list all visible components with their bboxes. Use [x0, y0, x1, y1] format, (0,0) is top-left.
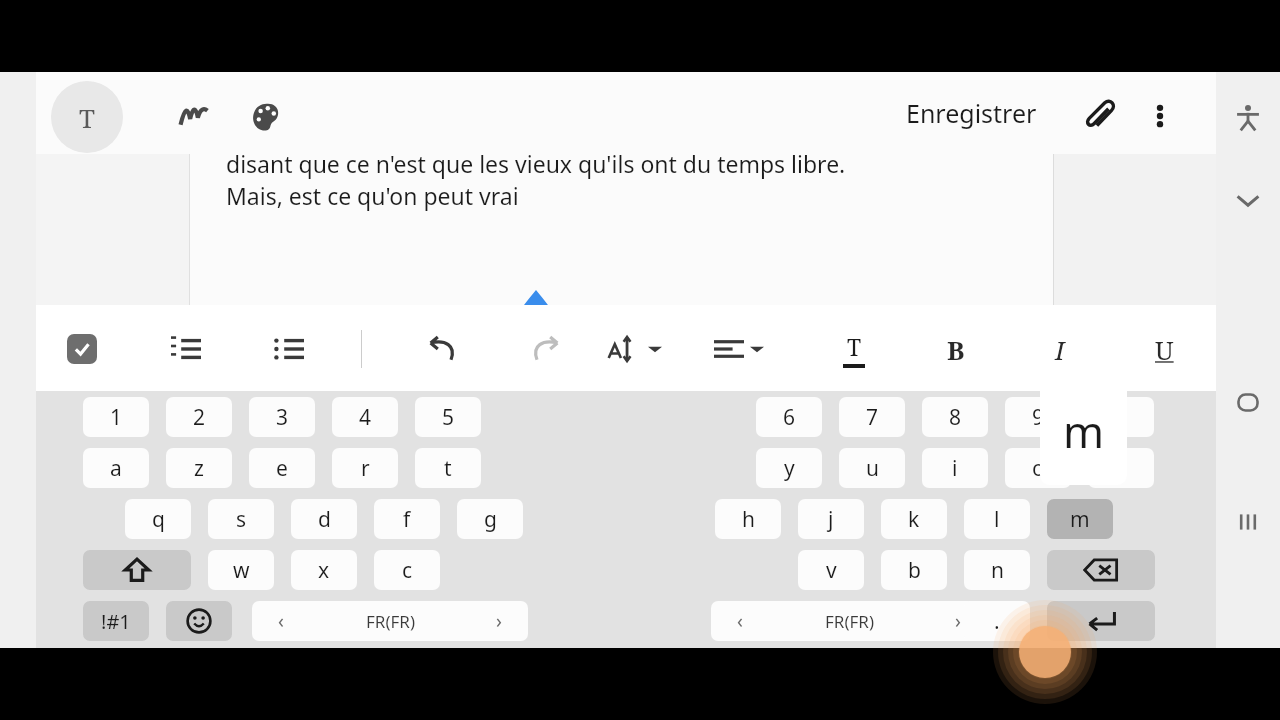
button[interactable]: i [922, 448, 988, 488]
staticText: h [742, 505, 755, 534]
staticText: m [1063, 401, 1105, 461]
staticText: b [908, 556, 921, 585]
button[interactable]: Numbered list [160, 323, 212, 375]
button[interactable]: o [1005, 448, 1071, 488]
button[interactable]: 6 [756, 397, 822, 437]
button[interactable]: g [457, 499, 523, 539]
button[interactable]: FR(FR) [711, 601, 987, 641]
button[interactable]: 9 [1005, 397, 1071, 437]
staticText: e [276, 454, 288, 483]
button[interactable]: j [798, 499, 864, 539]
button[interactable]: e [249, 448, 315, 488]
button[interactable]: B [930, 323, 982, 375]
staticText: T [79, 100, 95, 135]
button[interactable]: Text color [828, 323, 880, 375]
staticText: 5 [442, 403, 455, 432]
staticText: T [847, 331, 862, 362]
button[interactable]: b [881, 550, 947, 590]
staticText: B [947, 332, 965, 367]
button[interactable]: Font size [608, 323, 662, 375]
staticText: f [403, 505, 411, 534]
button[interactable]: v [798, 550, 864, 590]
staticText: 3 [276, 403, 289, 432]
staticText: Enregistrer [906, 96, 1037, 130]
button[interactable]: Shift [83, 550, 191, 590]
button[interactable]: Text format [51, 81, 123, 153]
button[interactable]: FR(FR) [252, 601, 528, 641]
staticText: q [152, 505, 165, 534]
button[interactable]: p [1088, 448, 1154, 488]
staticText: 9 [1032, 403, 1045, 432]
staticText: U [1155, 332, 1174, 367]
button[interactable]: 0 [1088, 397, 1154, 437]
button[interactable]: x [291, 550, 357, 590]
button[interactable]: Enter [1047, 601, 1155, 641]
button[interactable]: 1 [83, 397, 149, 437]
staticText: ‹ [737, 608, 743, 634]
button[interactable]: w [208, 550, 274, 590]
button[interactable]: l [964, 499, 1030, 539]
staticText: I [1055, 332, 1065, 367]
button[interactable]: h [715, 499, 781, 539]
staticText: x [318, 556, 330, 585]
button[interactable]: Enregistrer [906, 83, 1037, 143]
button[interactable]: Checklist [56, 323, 108, 375]
button[interactable]: z [166, 448, 232, 488]
button[interactable]: I [1034, 323, 1086, 375]
button[interactable]: k [881, 499, 947, 539]
button[interactable]: Hide keyboard [1216, 168, 1280, 232]
button[interactable]: Alignment [714, 323, 764, 375]
staticText: FR(FR) [366, 610, 415, 633]
staticText: r [361, 454, 370, 483]
button[interactable]: c [374, 550, 440, 590]
button[interactable]: d [291, 499, 357, 539]
button[interactable]: Backspace [1047, 550, 1155, 590]
button[interactable]: 2 [166, 397, 232, 437]
button[interactable]: Color palette [238, 89, 294, 145]
button[interactable]: u [839, 448, 905, 488]
staticText: 6 [783, 403, 796, 432]
button[interactable]: Undo [416, 323, 468, 375]
staticText: u [866, 454, 879, 483]
button[interactable]: 8 [922, 397, 988, 437]
button[interactable]: y [756, 448, 822, 488]
button[interactable]: Accessibility [1216, 86, 1280, 150]
button[interactable]: 5 [415, 397, 481, 437]
button[interactable]: a [83, 448, 149, 488]
button[interactable]: 7 [839, 397, 905, 437]
button[interactable]: Attach [1072, 88, 1128, 144]
staticText: w [233, 556, 250, 585]
staticText: !#1 [101, 608, 131, 635]
staticText: 7 [866, 403, 879, 432]
button[interactable]: m [1047, 499, 1113, 539]
button[interactable]: t [415, 448, 481, 488]
staticText: t [444, 454, 452, 483]
button[interactable]: s [208, 499, 274, 539]
staticText: l [994, 505, 1000, 534]
staticText: y [784, 454, 795, 483]
button[interactable]: U [1138, 323, 1190, 375]
button[interactable]: . [964, 601, 1030, 641]
button[interactable]: Emoji [166, 601, 232, 641]
staticText: › [955, 608, 961, 634]
button[interactable]: q [125, 499, 191, 539]
button[interactable]: !#1 [83, 601, 149, 641]
button[interactable]: Home [1216, 370, 1280, 434]
staticText: › [496, 608, 502, 634]
button[interactable]: r [332, 448, 398, 488]
button[interactable]: Redo [520, 323, 572, 375]
button[interactable]: Draw [166, 89, 222, 145]
staticText: v [826, 556, 837, 585]
button[interactable]: n [964, 550, 1030, 590]
button[interactable]: More options [1132, 88, 1188, 144]
button[interactable]: Recent apps [1216, 490, 1280, 554]
staticText: m [1070, 505, 1090, 534]
button[interactable]: 4 [332, 397, 398, 437]
button[interactable]: 3 [249, 397, 315, 437]
button[interactable]: Bulleted list [263, 323, 315, 375]
staticText: 8 [949, 403, 962, 432]
button[interactable]: f [374, 499, 440, 539]
staticText: FR(FR) [825, 610, 874, 633]
staticText: j [828, 505, 834, 534]
